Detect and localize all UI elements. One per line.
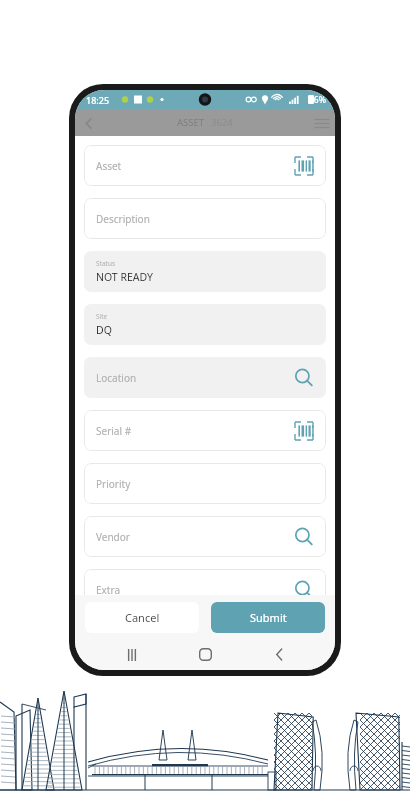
button[interactable]: Asset <box>84 145 326 186</box>
button[interactable]: Serial # <box>84 410 326 451</box>
staticText: Site <box>96 312 108 321</box>
staticText: ASSET <box>177 116 205 129</box>
other: Search <box>294 368 314 388</box>
staticText: Serial # <box>96 424 132 438</box>
staticText: Asset <box>96 159 122 173</box>
staticText: Status <box>96 259 116 268</box>
button[interactable]: Status <box>84 251 326 292</box>
staticText: Vendor <box>96 530 130 544</box>
button[interactable]: Menu <box>309 110 335 136</box>
button[interactable]: Back <box>262 639 296 670</box>
staticText: Cancel <box>125 610 160 625</box>
other: Search <box>294 527 314 547</box>
staticText: NOT READY <box>96 270 154 284</box>
staticText: 18:25 <box>86 94 110 106</box>
button[interactable]: Recents <box>115 639 149 670</box>
button[interactable]: Vendor <box>84 516 326 557</box>
staticText: Location <box>96 371 137 385</box>
button[interactable]: Location <box>84 357 326 398</box>
other: Search <box>294 580 314 600</box>
button[interactable]: Back <box>75 110 101 136</box>
button[interactable]: Extra <box>84 569 326 610</box>
staticText: 3624 <box>211 116 233 129</box>
other: Scan barcode <box>294 421 314 441</box>
staticText: Extra <box>96 583 120 597</box>
button[interactable]: Description <box>84 198 326 239</box>
staticText: Submit <box>250 610 287 625</box>
staticText: 96% <box>309 94 326 106</box>
staticText: Description <box>96 212 150 226</box>
staticText: DQ <box>96 323 112 337</box>
button[interactable]: Priority <box>84 463 326 504</box>
other: Scan barcode <box>294 156 314 176</box>
button[interactable]: Cancel <box>85 602 199 633</box>
button[interactable]: Home <box>188 639 222 670</box>
staticText: Priority <box>96 477 131 491</box>
button[interactable]: Site <box>84 304 326 345</box>
button[interactable]: Submit <box>211 602 325 633</box>
